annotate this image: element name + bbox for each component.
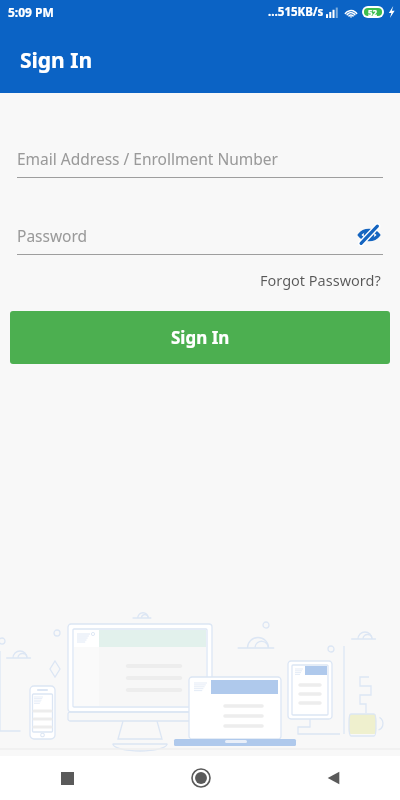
button[interactable]: Email Address / Enrollment Number xyxy=(17,145,383,178)
button[interactable]: Forgot Password? xyxy=(258,268,383,292)
staticText: Password xyxy=(17,225,88,246)
button[interactable]: Show password xyxy=(355,222,383,248)
button[interactable]: Password xyxy=(17,222,383,255)
staticText: Email Address / Enrollment Number xyxy=(17,148,278,169)
staticText: Forgot Password? xyxy=(260,270,381,290)
button[interactable]: Home xyxy=(134,756,267,800)
staticText: Sign In xyxy=(171,326,230,349)
staticText: Sign In xyxy=(20,46,93,75)
staticText: …515KB/s xyxy=(268,4,324,20)
staticText: 52 xyxy=(368,7,378,18)
button[interactable]: Recents xyxy=(0,756,134,800)
button[interactable]: Back xyxy=(267,756,400,800)
button[interactable]: Sign In xyxy=(10,311,390,364)
staticText: 5:09 PM xyxy=(8,4,54,20)
